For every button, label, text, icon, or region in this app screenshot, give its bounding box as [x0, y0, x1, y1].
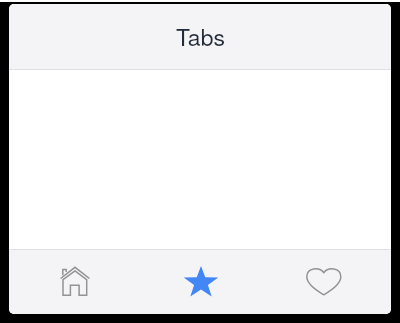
button[interactable]: Home [15, 250, 134, 314]
button[interactable]: Favorites [141, 250, 260, 314]
button[interactable]: Likes [266, 250, 385, 314]
staticText: Tabs [176, 20, 225, 53]
